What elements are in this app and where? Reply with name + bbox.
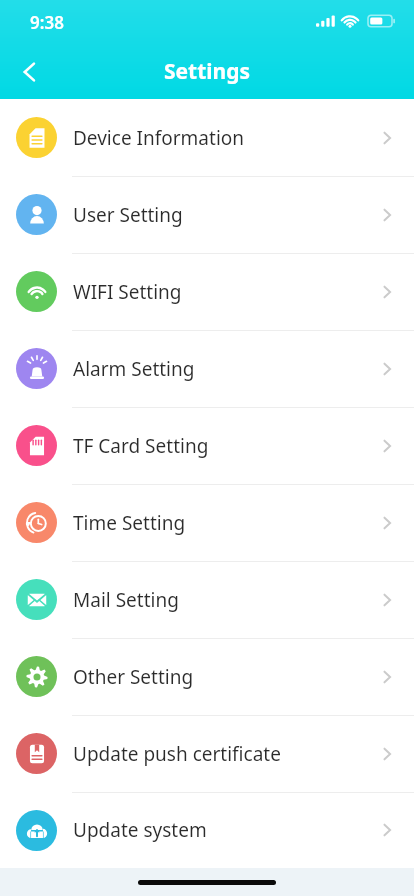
button[interactable]: Back	[8, 50, 52, 94]
staticText: Device Information	[73, 125, 245, 151]
button[interactable]: Update push certificate	[0, 715, 414, 792]
staticText: Update push certificate	[73, 741, 281, 767]
staticText: Other Setting	[73, 664, 194, 690]
button[interactable]: Other Setting	[0, 638, 414, 715]
button[interactable]: TF Card Setting	[0, 407, 414, 484]
staticText: Time Setting	[73, 510, 186, 536]
button[interactable]: Time Setting	[0, 484, 414, 561]
button[interactable]: Update system	[0, 792, 414, 868]
staticText: Update system	[73, 817, 207, 843]
button[interactable]: Alarm Setting	[0, 330, 414, 407]
staticText: Mail Setting	[73, 587, 179, 613]
button[interactable]: WIFI Setting	[0, 253, 414, 330]
staticText: TF Card Setting	[73, 433, 209, 459]
staticText: User Setting	[73, 202, 183, 228]
button[interactable]: Device Information	[0, 99, 414, 176]
staticText: WIFI Setting	[73, 279, 182, 305]
button[interactable]: Mail Setting	[0, 561, 414, 638]
button[interactable]: User Setting	[0, 176, 414, 253]
staticText: 9:38	[30, 11, 64, 34]
staticText: Settings	[164, 57, 251, 86]
staticText: Alarm Setting	[73, 356, 195, 382]
